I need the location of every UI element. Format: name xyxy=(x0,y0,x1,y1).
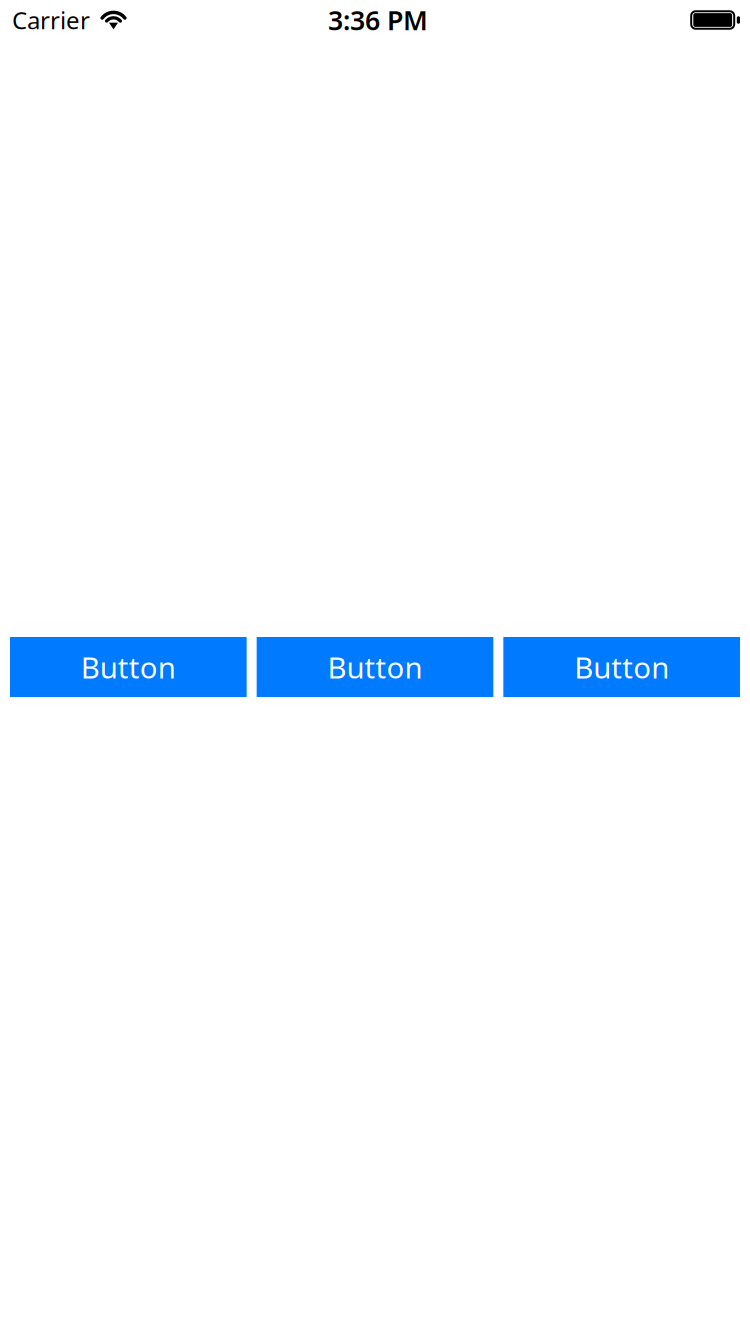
staticText: Button xyxy=(574,647,669,686)
staticText: Button xyxy=(327,647,422,686)
button[interactable]: Button xyxy=(10,637,247,697)
button[interactable]: Button xyxy=(503,637,740,697)
staticText: Button xyxy=(81,647,176,686)
button[interactable]: Button xyxy=(257,637,493,697)
staticText: Carrier xyxy=(12,4,90,36)
staticText: 3:36 PM xyxy=(328,2,428,38)
